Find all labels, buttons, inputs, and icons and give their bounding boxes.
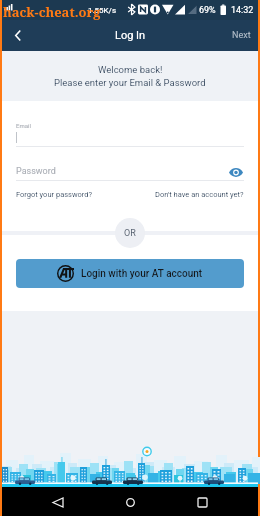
staticText: 69% (199, 5, 216, 16)
button[interactable]: Show password (228, 164, 244, 180)
button[interactable]: Next (226, 26, 258, 45)
staticText: Email (16, 122, 31, 129)
staticText: Log In (115, 29, 146, 42)
staticText: Welcome back! (98, 64, 163, 75)
button[interactable]: Back (2, 20, 34, 51)
staticText: Next (232, 30, 251, 41)
button[interactable]: Password (16, 163, 244, 181)
staticText: Please enter your Email & Password (54, 77, 206, 88)
staticText: Password (16, 166, 56, 177)
staticText: 1.55K/s (88, 6, 117, 15)
staticText: 14:32 (231, 5, 254, 16)
staticText: Don't have an account yet? (155, 190, 244, 199)
button[interactable]: Login with your AT account (16, 259, 244, 288)
staticText: hack-cheat.org (3, 3, 101, 21)
staticText: Login with your AT account (81, 268, 203, 280)
staticText: OR (124, 228, 136, 239)
button[interactable]: Email (16, 122, 244, 147)
staticText: Forgot your password? (16, 190, 93, 199)
button[interactable]: Don't have an account yet? (155, 190, 244, 199)
button[interactable]: Forgot your password? (16, 190, 93, 199)
button[interactable]: Recent apps (190, 490, 214, 514)
button[interactable]: Back (46, 490, 70, 514)
button[interactable]: Home (118, 490, 142, 514)
